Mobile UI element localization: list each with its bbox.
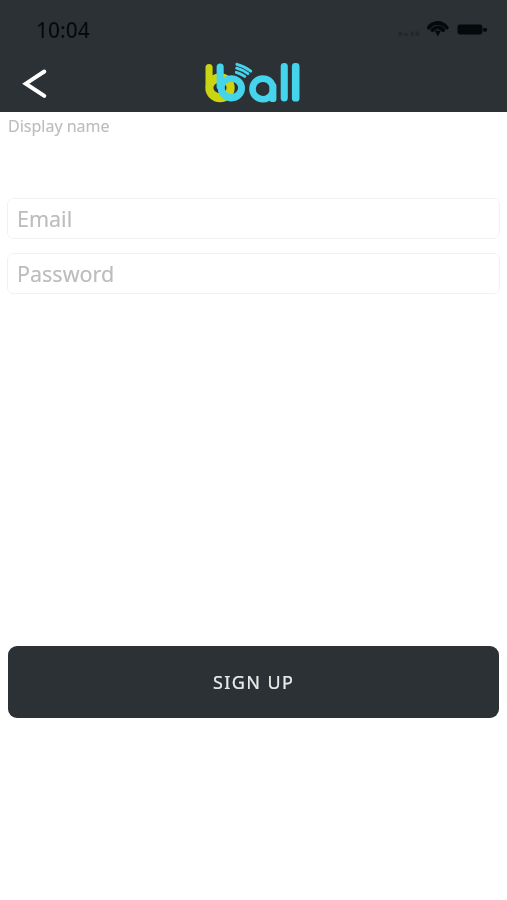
staticText: Display name [8, 115, 110, 137]
button[interactable]: Back [4, 60, 60, 108]
button[interactable]: SIGN UP [8, 646, 499, 718]
button[interactable]: Email [7, 198, 500, 239]
staticText: Password [17, 259, 115, 288]
button[interactable]: Password [7, 253, 500, 294]
staticText: Email [17, 204, 73, 233]
staticText: 10:04 [36, 16, 90, 45]
staticText: SIGN UP [213, 670, 295, 695]
